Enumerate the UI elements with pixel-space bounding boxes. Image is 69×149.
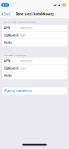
- staticText: internet: [20, 26, 32, 30]
- staticText: internet: [20, 59, 32, 63]
- button[interactable]: Użytkownik: [2, 32, 67, 39]
- staticText: Hasło: [4, 41, 12, 45]
- staticText: Hasło: [4, 74, 12, 78]
- staticText: Użytkownik: [4, 66, 18, 70]
- button[interactable]: Użytkownik: [2, 65, 67, 72]
- button[interactable]: APN: [2, 25, 67, 32]
- staticText: HOTSPOT OSOBISTY: [4, 53, 26, 57]
- button[interactable]: Sieć: [0, 10, 11, 18]
- staticText: DANE SIECI KOMÓRKOWEJ: [4, 20, 36, 24]
- staticText: Wyzeruj ustawienia: [4, 89, 32, 93]
- button[interactable]: Hasło: [2, 39, 67, 46]
- staticText: Użytkownik: [4, 33, 18, 37]
- button[interactable]: Wyzeruj ustawienia: [2, 87, 67, 94]
- staticText: APN: [4, 26, 10, 30]
- button[interactable]: Hasło: [2, 72, 67, 79]
- staticText: APN: [4, 59, 10, 63]
- button[interactable]: APN: [2, 58, 67, 65]
- staticText: Sieć: [4, 12, 11, 16]
- staticText: user: [20, 33, 26, 37]
- staticText: user: [20, 66, 26, 70]
- staticText: Dane sieci komórkowej: [15, 12, 53, 16]
